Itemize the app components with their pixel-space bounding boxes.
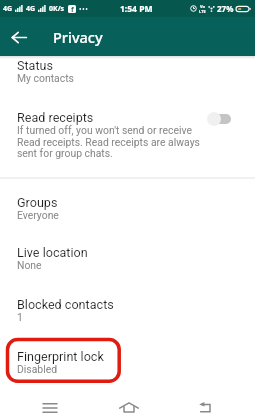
staticText: 1:54 PM (120, 3, 153, 15)
staticText: 4G (3, 4, 13, 14)
staticText: Fingerprint lock (17, 349, 104, 364)
button[interactable]: Status (0, 58, 255, 88)
button[interactable]: Fingerprint lock (0, 349, 255, 379)
staticText: 4G (26, 4, 36, 14)
staticText: Everyone (17, 209, 59, 221)
staticText: Groups (17, 195, 58, 210)
button[interactable]: Read receipts (0, 106, 255, 166)
staticText: 1 (17, 311, 23, 323)
staticText: Read receipts (17, 110, 94, 125)
staticText: Live location (17, 245, 88, 260)
button[interactable]: Groups (0, 195, 255, 225)
staticText: LTE (199, 9, 206, 14)
button[interactable]: Recent apps (29, 390, 59, 418)
button[interactable]: Navigate up (0, 18, 38, 56)
staticText: 0K/s (49, 4, 65, 14)
staticText: If turned off, you won't send or receive (17, 124, 192, 136)
button[interactable]: Blocked contacts (0, 297, 255, 327)
staticText: Vo (200, 4, 206, 9)
staticText: 27% (217, 3, 234, 14)
button[interactable]: Read receipts toggle (207, 112, 231, 126)
button[interactable]: Live location (0, 245, 255, 275)
staticText: None (17, 259, 42, 271)
staticText: Read receipts. Read receipts are always (17, 136, 200, 148)
staticText: Status (17, 58, 54, 73)
staticText: Privacy (53, 27, 103, 47)
button[interactable]: Home (113, 390, 145, 418)
button[interactable]: Back (190, 390, 220, 418)
staticText: Blocked contacts (17, 297, 114, 312)
staticText: Disabled (17, 363, 58, 375)
staticText: My contacts (17, 72, 74, 84)
staticText: sent for group chats. (17, 147, 113, 159)
staticText: f (71, 5, 74, 13)
